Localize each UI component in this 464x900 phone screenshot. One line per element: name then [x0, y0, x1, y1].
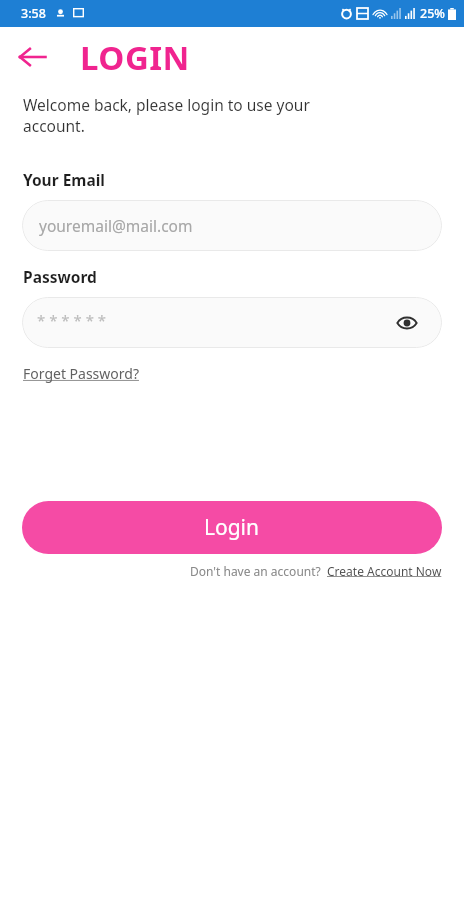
button[interactable]: Login [22, 501, 442, 554]
button[interactable]: Back [8, 33, 56, 81]
staticText: Don't have an account? [190, 563, 321, 579]
staticText: Password [23, 266, 97, 287]
staticText: 25% [420, 5, 445, 22]
button[interactable]: * * * * * * [22, 297, 442, 348]
staticText: 3:58 [21, 5, 46, 22]
staticText: Welcome back, please login to use your a… [23, 94, 310, 137]
staticText: Login [204, 513, 260, 542]
staticText: Forget Password? [23, 364, 139, 383]
button[interactable]: Create Account Now [327, 563, 442, 579]
staticText: youremail@mail.com [39, 215, 193, 236]
staticText: LOGIN [80, 35, 190, 80]
button[interactable]: Forget Password? [23, 362, 139, 385]
staticText: Your Email [23, 169, 105, 190]
staticText: * * * * * * [37, 310, 107, 330]
button[interactable]: Show password [394, 310, 420, 336]
staticText: Create Account Now [327, 563, 442, 579]
button[interactable]: youremail@mail.com [22, 200, 442, 251]
